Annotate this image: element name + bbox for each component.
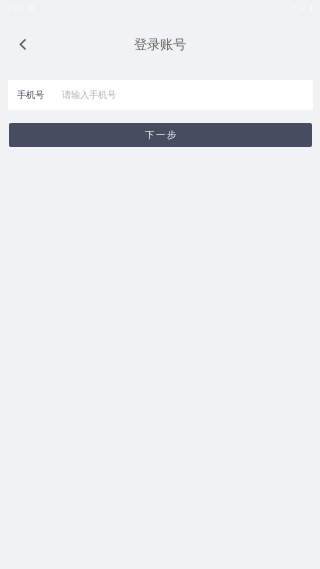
- button[interactable]: 手机号: [8, 80, 313, 110]
- staticText: 请输入手机号: [62, 89, 116, 101]
- staticText: 登录账号: [134, 36, 186, 53]
- button[interactable]: Back: [0, 27, 36, 61]
- staticText: 手机号: [17, 89, 44, 101]
- staticText: 下一步: [145, 129, 176, 141]
- button[interactable]: 下一步: [9, 123, 312, 147]
